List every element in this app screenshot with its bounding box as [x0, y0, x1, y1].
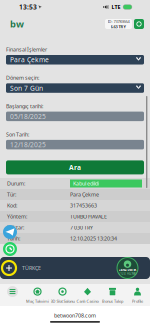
staticText: bw	[10, 18, 24, 30]
staticText: Yöntem:	[7, 213, 27, 220]
staticText: Canlı Casino	[76, 299, 98, 304]
staticText: Tarih:	[7, 235, 20, 242]
button[interactable]: 12/18/2025	[6, 140, 144, 149]
staticText: 7 030 TRY	[70, 224, 93, 231]
button[interactable]: Profile	[125, 284, 150, 306]
staticText: Dönem seçin:	[6, 74, 39, 81]
button[interactable]: 3D Slot Salonu	[50, 284, 75, 306]
button[interactable]	[0, 284, 25, 306]
button[interactable]: Maç Takvimi	[25, 284, 50, 306]
staticText: Ara	[69, 163, 81, 172]
staticText: Miktar:	[7, 224, 24, 231]
button[interactable]: bw	[6, 18, 24, 30]
staticText: LTE	[111, 3, 120, 11]
staticText: TÜRKÇE	[22, 264, 41, 272]
staticText: TURBO HAVALE	[70, 213, 107, 220]
button[interactable]: Para Çekme	[6, 55, 144, 64]
staticText: Finansal İşlemler	[6, 46, 47, 53]
button[interactable]: TÜRKÇE	[22, 264, 41, 272]
button[interactable]: Telegram	[3, 225, 17, 239]
staticText: 13:53	[19, 3, 37, 11]
button[interactable]: Add	[2, 261, 16, 275]
staticText: Durum:	[7, 180, 25, 187]
button[interactable]: Ara	[6, 160, 144, 174]
staticText: 317453663	[70, 202, 97, 209]
staticText: 12.10.2025 13:20:34	[70, 235, 117, 242]
button[interactable]: ID: 73783664	[105, 19, 132, 29]
staticText: Kod:	[7, 202, 17, 209]
staticText: ID: 73783664	[107, 19, 129, 24]
staticText: Son 7 Gün	[10, 84, 43, 92]
staticText: 05/18/2025	[10, 112, 46, 121]
staticText: Son Tarih:	[6, 131, 29, 138]
staticText: Profile	[132, 299, 143, 304]
staticText: Para Çekme	[10, 55, 49, 64]
staticText: 7/24 HİZMET	[119, 272, 136, 276]
staticText: betwoon708.com	[54, 312, 96, 319]
staticText: Tür:	[7, 191, 16, 198]
staticText: Başlangıç tarihi:	[6, 103, 43, 110]
button[interactable]: WhatsApp	[3, 242, 17, 256]
button[interactable]: Canlı Destek	[117, 257, 138, 278]
button[interactable]: 05/18/2025	[6, 112, 144, 121]
staticText: 3D Slot Salonu	[50, 299, 74, 304]
staticText: Para Çekme	[70, 191, 99, 198]
button[interactable]: Canlı Casino	[75, 284, 100, 306]
staticText: Maç Takvimi	[26, 299, 49, 304]
staticText: 6.63 TRY	[110, 24, 126, 29]
button[interactable]: Wallet	[134, 19, 144, 29]
staticText: Bonus Talep	[102, 299, 123, 304]
staticText: CANLI DESTEK	[118, 268, 136, 272]
staticText: 12/18/2025	[10, 140, 46, 149]
staticText: Kabul edildi	[73, 180, 99, 187]
button[interactable]: Bonus Talep	[100, 284, 125, 306]
button[interactable]: Son 7 Gün	[6, 83, 144, 93]
